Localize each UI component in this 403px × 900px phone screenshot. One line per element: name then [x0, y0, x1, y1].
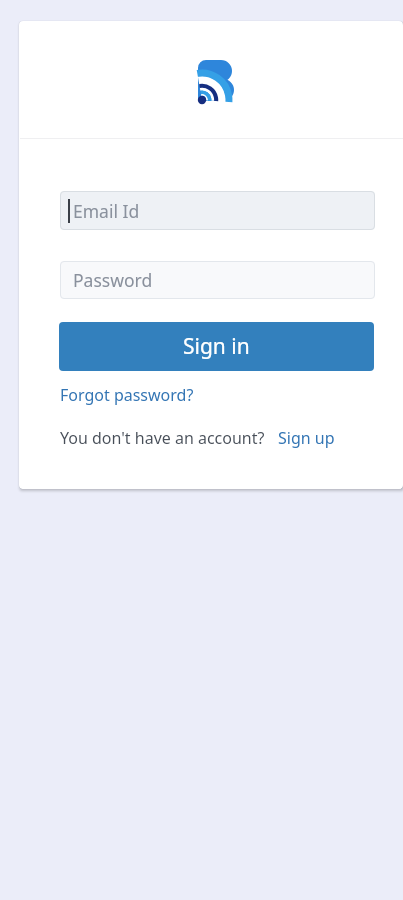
- button[interactable]: Sign up: [278, 427, 335, 449]
- button[interactable]: Email Id: [60, 191, 375, 230]
- staticText: Forgot password?: [60, 384, 194, 406]
- button[interactable]: Password: [60, 261, 375, 299]
- staticText: Email Id: [73, 199, 140, 223]
- staticText: You don't have an account?: [60, 427, 265, 449]
- button[interactable]: Sign in: [59, 322, 374, 371]
- button[interactable]: Forgot password?: [60, 384, 194, 406]
- staticText: Password: [73, 268, 153, 292]
- staticText: Sign up: [278, 427, 335, 449]
- staticText: Sign in: [183, 332, 250, 361]
